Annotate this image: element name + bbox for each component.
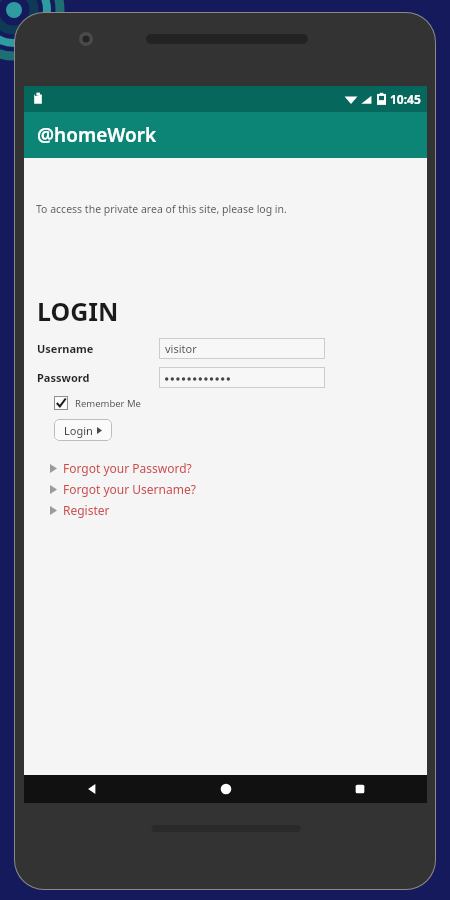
button[interactable] — [159, 367, 325, 388]
button[interactable]: Forgot your Password? — [50, 460, 427, 476]
staticText: Forgot your Username? — [63, 481, 196, 497]
staticText: Password — [37, 370, 159, 385]
staticText: @homeWork — [37, 122, 157, 148]
staticText: Forgot your Password? — [63, 460, 192, 476]
staticText: Remember Me — [75, 397, 141, 410]
button[interactable]: Back — [24, 775, 159, 803]
button[interactable]: @homeWork — [24, 112, 427, 158]
button[interactable]: Recent apps — [293, 775, 427, 803]
staticText: LOGIN — [37, 294, 119, 328]
button[interactable]: visitor — [159, 338, 325, 359]
button[interactable]: Forgot your Username? — [50, 481, 427, 497]
staticText: visitor — [165, 341, 197, 356]
staticText: Register — [63, 502, 110, 518]
button[interactable]: Home — [159, 775, 293, 803]
staticText: To access the private area of this site,… — [36, 202, 287, 216]
button[interactable]: Login — [54, 419, 112, 441]
staticText: Username — [37, 341, 159, 356]
staticText: Login — [64, 423, 93, 438]
button[interactable]: Register — [50, 502, 427, 518]
button[interactable]: Remember Me — [54, 396, 141, 410]
staticText: 10:45 — [390, 91, 421, 107]
